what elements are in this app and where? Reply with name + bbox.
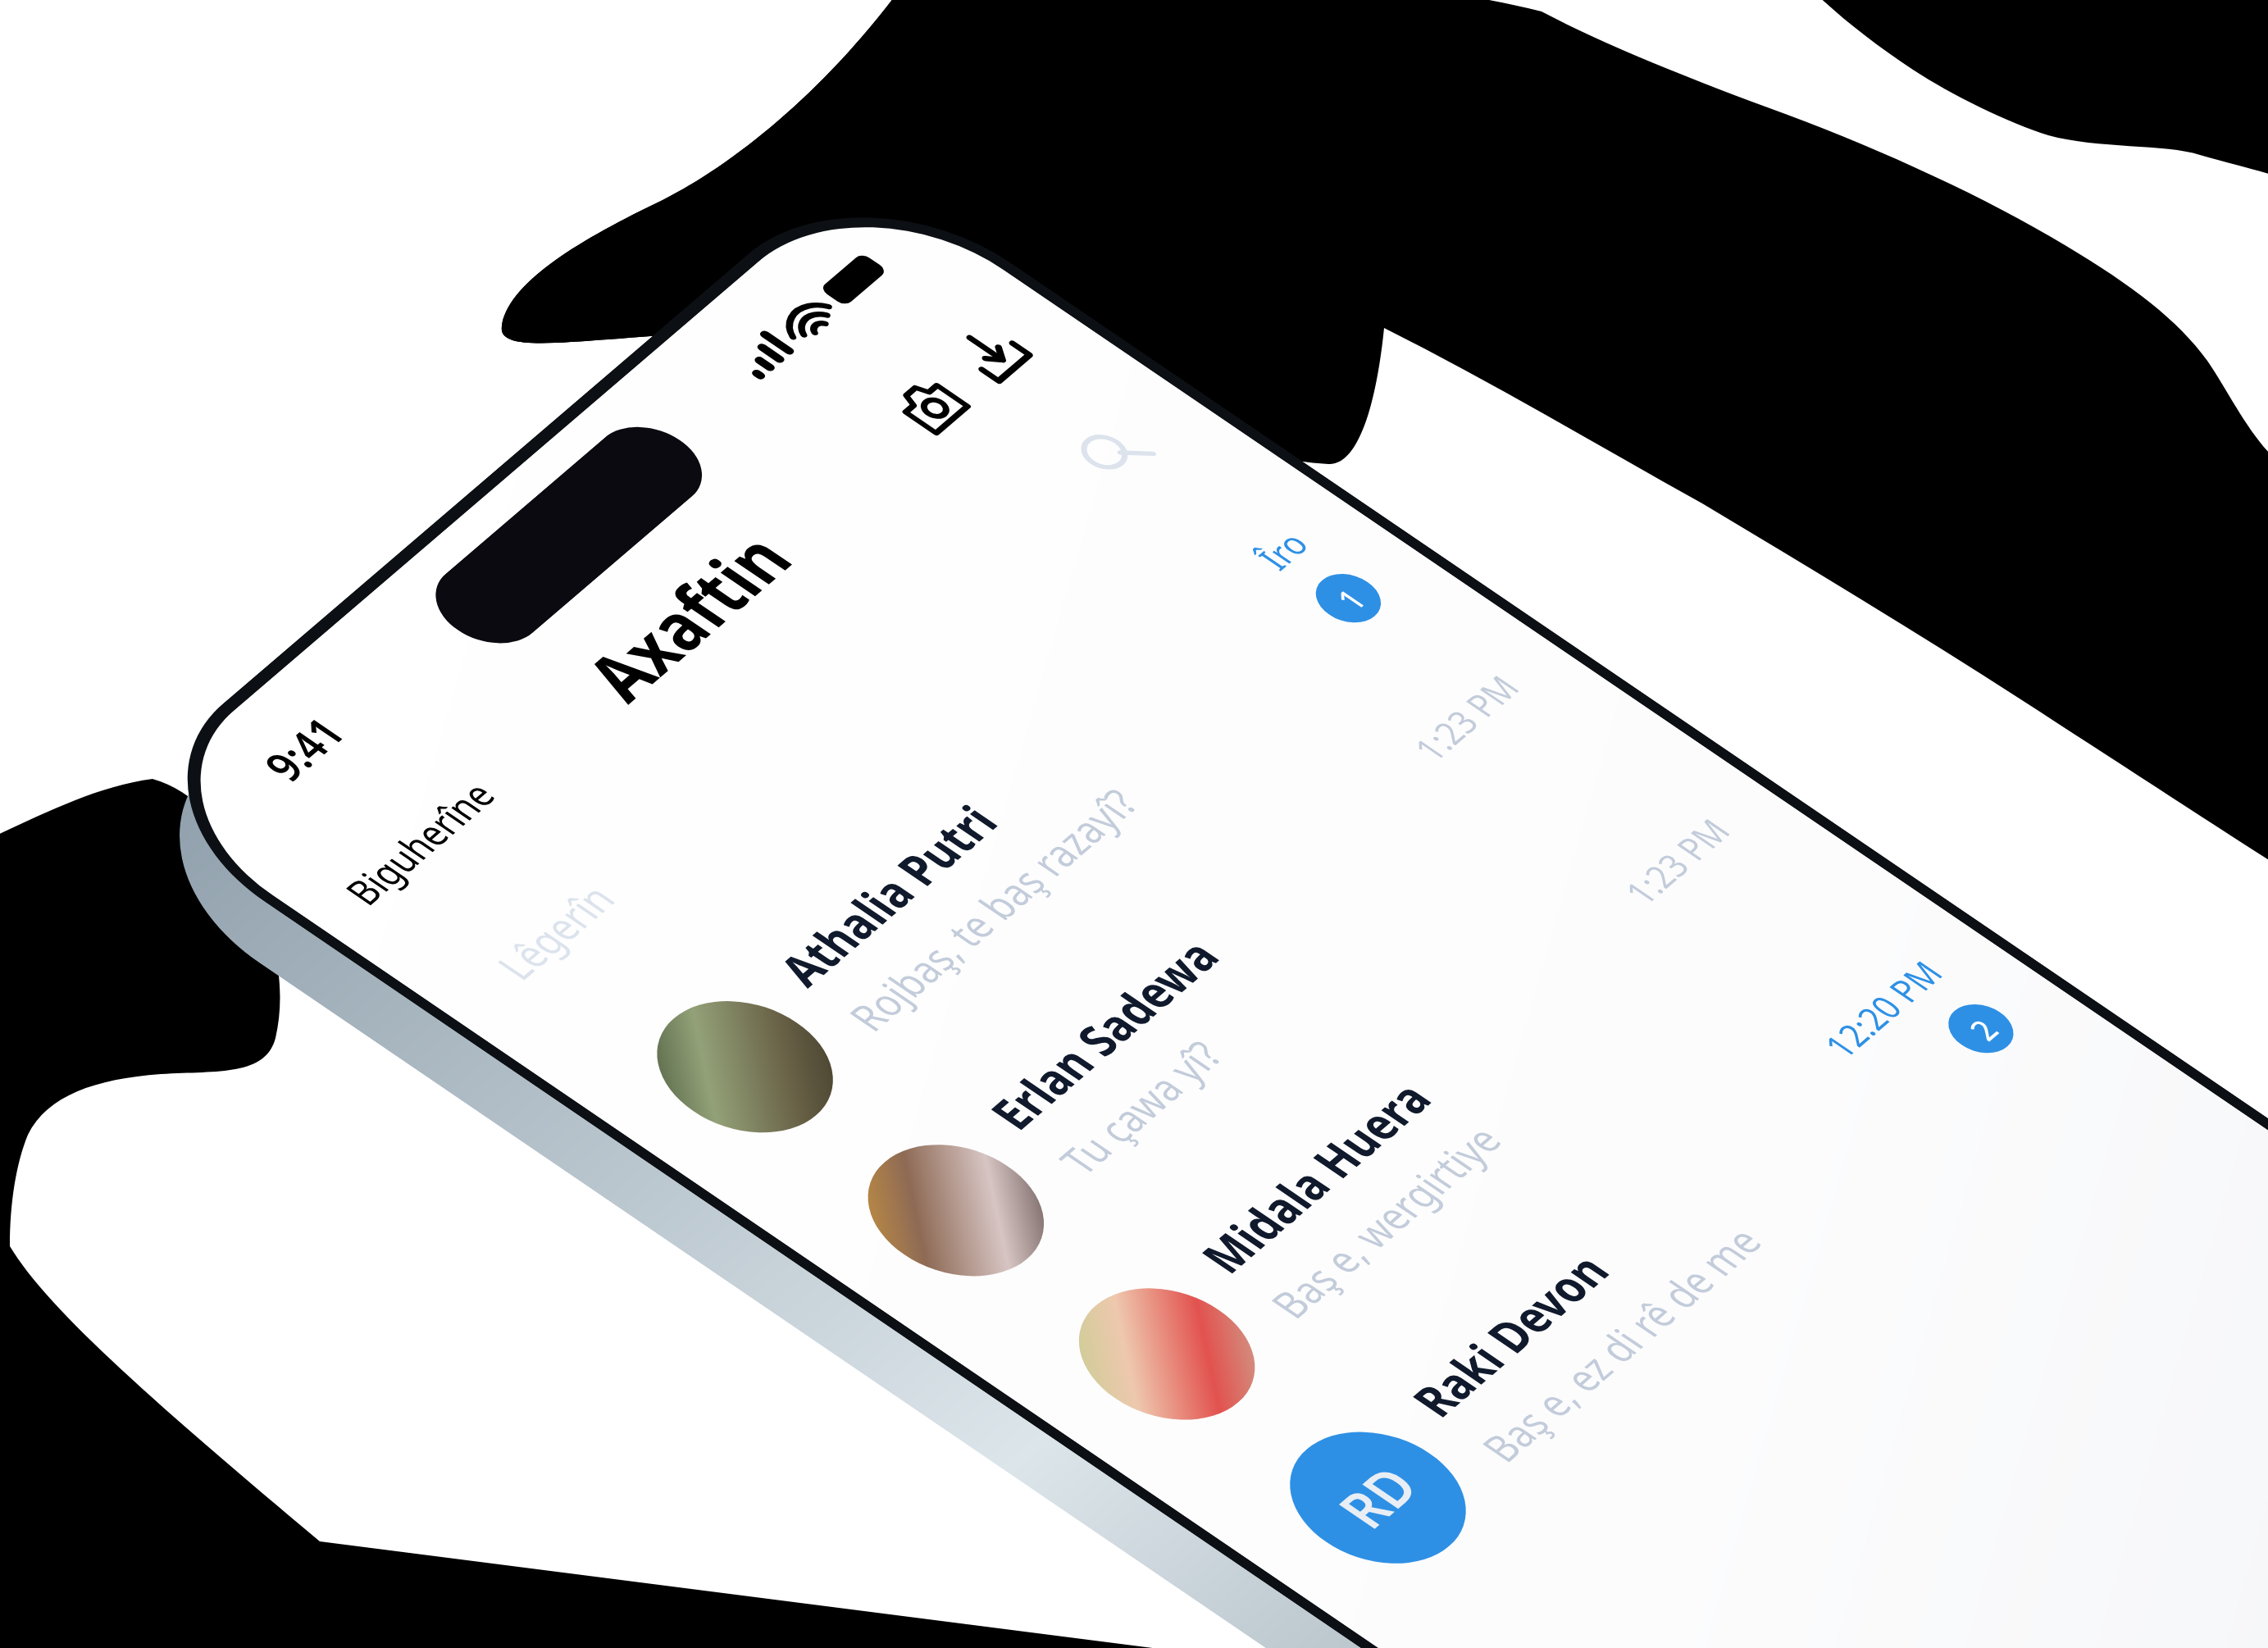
staticText: Erlan Sadewa: [974, 926, 1236, 1141]
staticText: Athalia Putri: [763, 793, 1014, 998]
staticText: 12:20 PM: [1811, 951, 1952, 1065]
staticText: 9:41: [248, 706, 358, 791]
staticText: Baş e, ez di rê de me: [1467, 1216, 1775, 1472]
button[interactable]: Biguherîne: [313, 757, 527, 928]
staticText: 1:23 PM: [1612, 808, 1742, 912]
staticText: Biguherîne: [331, 771, 509, 915]
button[interactable]: RD: [1175, 883, 2116, 1648]
button[interactable]: Midala Huera: [964, 739, 1905, 1510]
staticText: Axaftin: [560, 514, 815, 717]
staticText: Rojbaş, te baş razayî?: [834, 777, 1152, 1041]
staticText: Lêgerîn: [482, 874, 628, 990]
button[interactable]: New photo: [872, 361, 990, 450]
button[interactable]: Athalia Putri: [542, 453, 1483, 1222]
button[interactable]: New message: [933, 308, 1051, 397]
staticText: 1:23 PM: [1401, 664, 1531, 768]
staticText: Îro: [1245, 521, 1320, 577]
staticText: 2: [1957, 1010, 2010, 1048]
staticText: 1: [1324, 579, 1377, 618]
staticText: Raki Devon: [1396, 1241, 1626, 1429]
staticText: Midala Huera: [1185, 1070, 1447, 1285]
staticText: Tu çawa yî?: [1045, 1029, 1237, 1184]
staticText: Baş e, wergirtiye: [1256, 1115, 1514, 1328]
button[interactable]: Erlan Sadewa: [753, 596, 1694, 1366]
staticText: RD: [1319, 1451, 1439, 1542]
button[interactable]: Search: [1044, 401, 1180, 504]
